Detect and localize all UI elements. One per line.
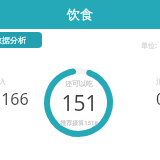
staticText: 消耗	[156, 77, 160, 86]
staticText: 还可以吃	[65, 79, 93, 88]
staticText: 151	[61, 89, 98, 118]
button[interactable]: 消耗	[154, 77, 160, 110]
button[interactable]: 数据分析	[0, 32, 42, 48]
staticText: 推荐摄算1318	[60, 119, 98, 127]
staticText: 数据分析	[0, 35, 26, 45]
staticText: 饮食	[67, 6, 93, 22]
staticText: 摄入	[0, 77, 6, 86]
staticText: 0	[156, 88, 160, 110]
staticText: 单位:	[141, 41, 157, 51]
button[interactable]: 还可以吃 151 千卡	[44, 68, 113, 137]
button[interactable]: 摄入	[0, 77, 31, 110]
staticText: 1166	[0, 88, 29, 110]
